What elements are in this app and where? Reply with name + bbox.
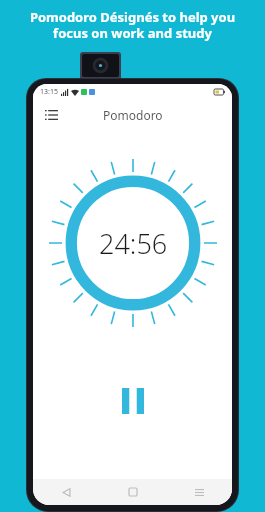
button[interactable]: Home — [100, 479, 166, 505]
button[interactable]: Recents — [166, 479, 232, 505]
button[interactable]: Pause — [111, 384, 155, 418]
button[interactable]: Back — [33, 479, 100, 505]
staticText: 13:15 — [40, 87, 58, 97]
staticText: Pomodoro Désignés to help you focus on w… — [10, 8, 255, 41]
button[interactable]: Menu — [38, 102, 64, 128]
staticText: 24:56 — [99, 225, 168, 262]
staticText: Pomodoro — [103, 107, 163, 123]
